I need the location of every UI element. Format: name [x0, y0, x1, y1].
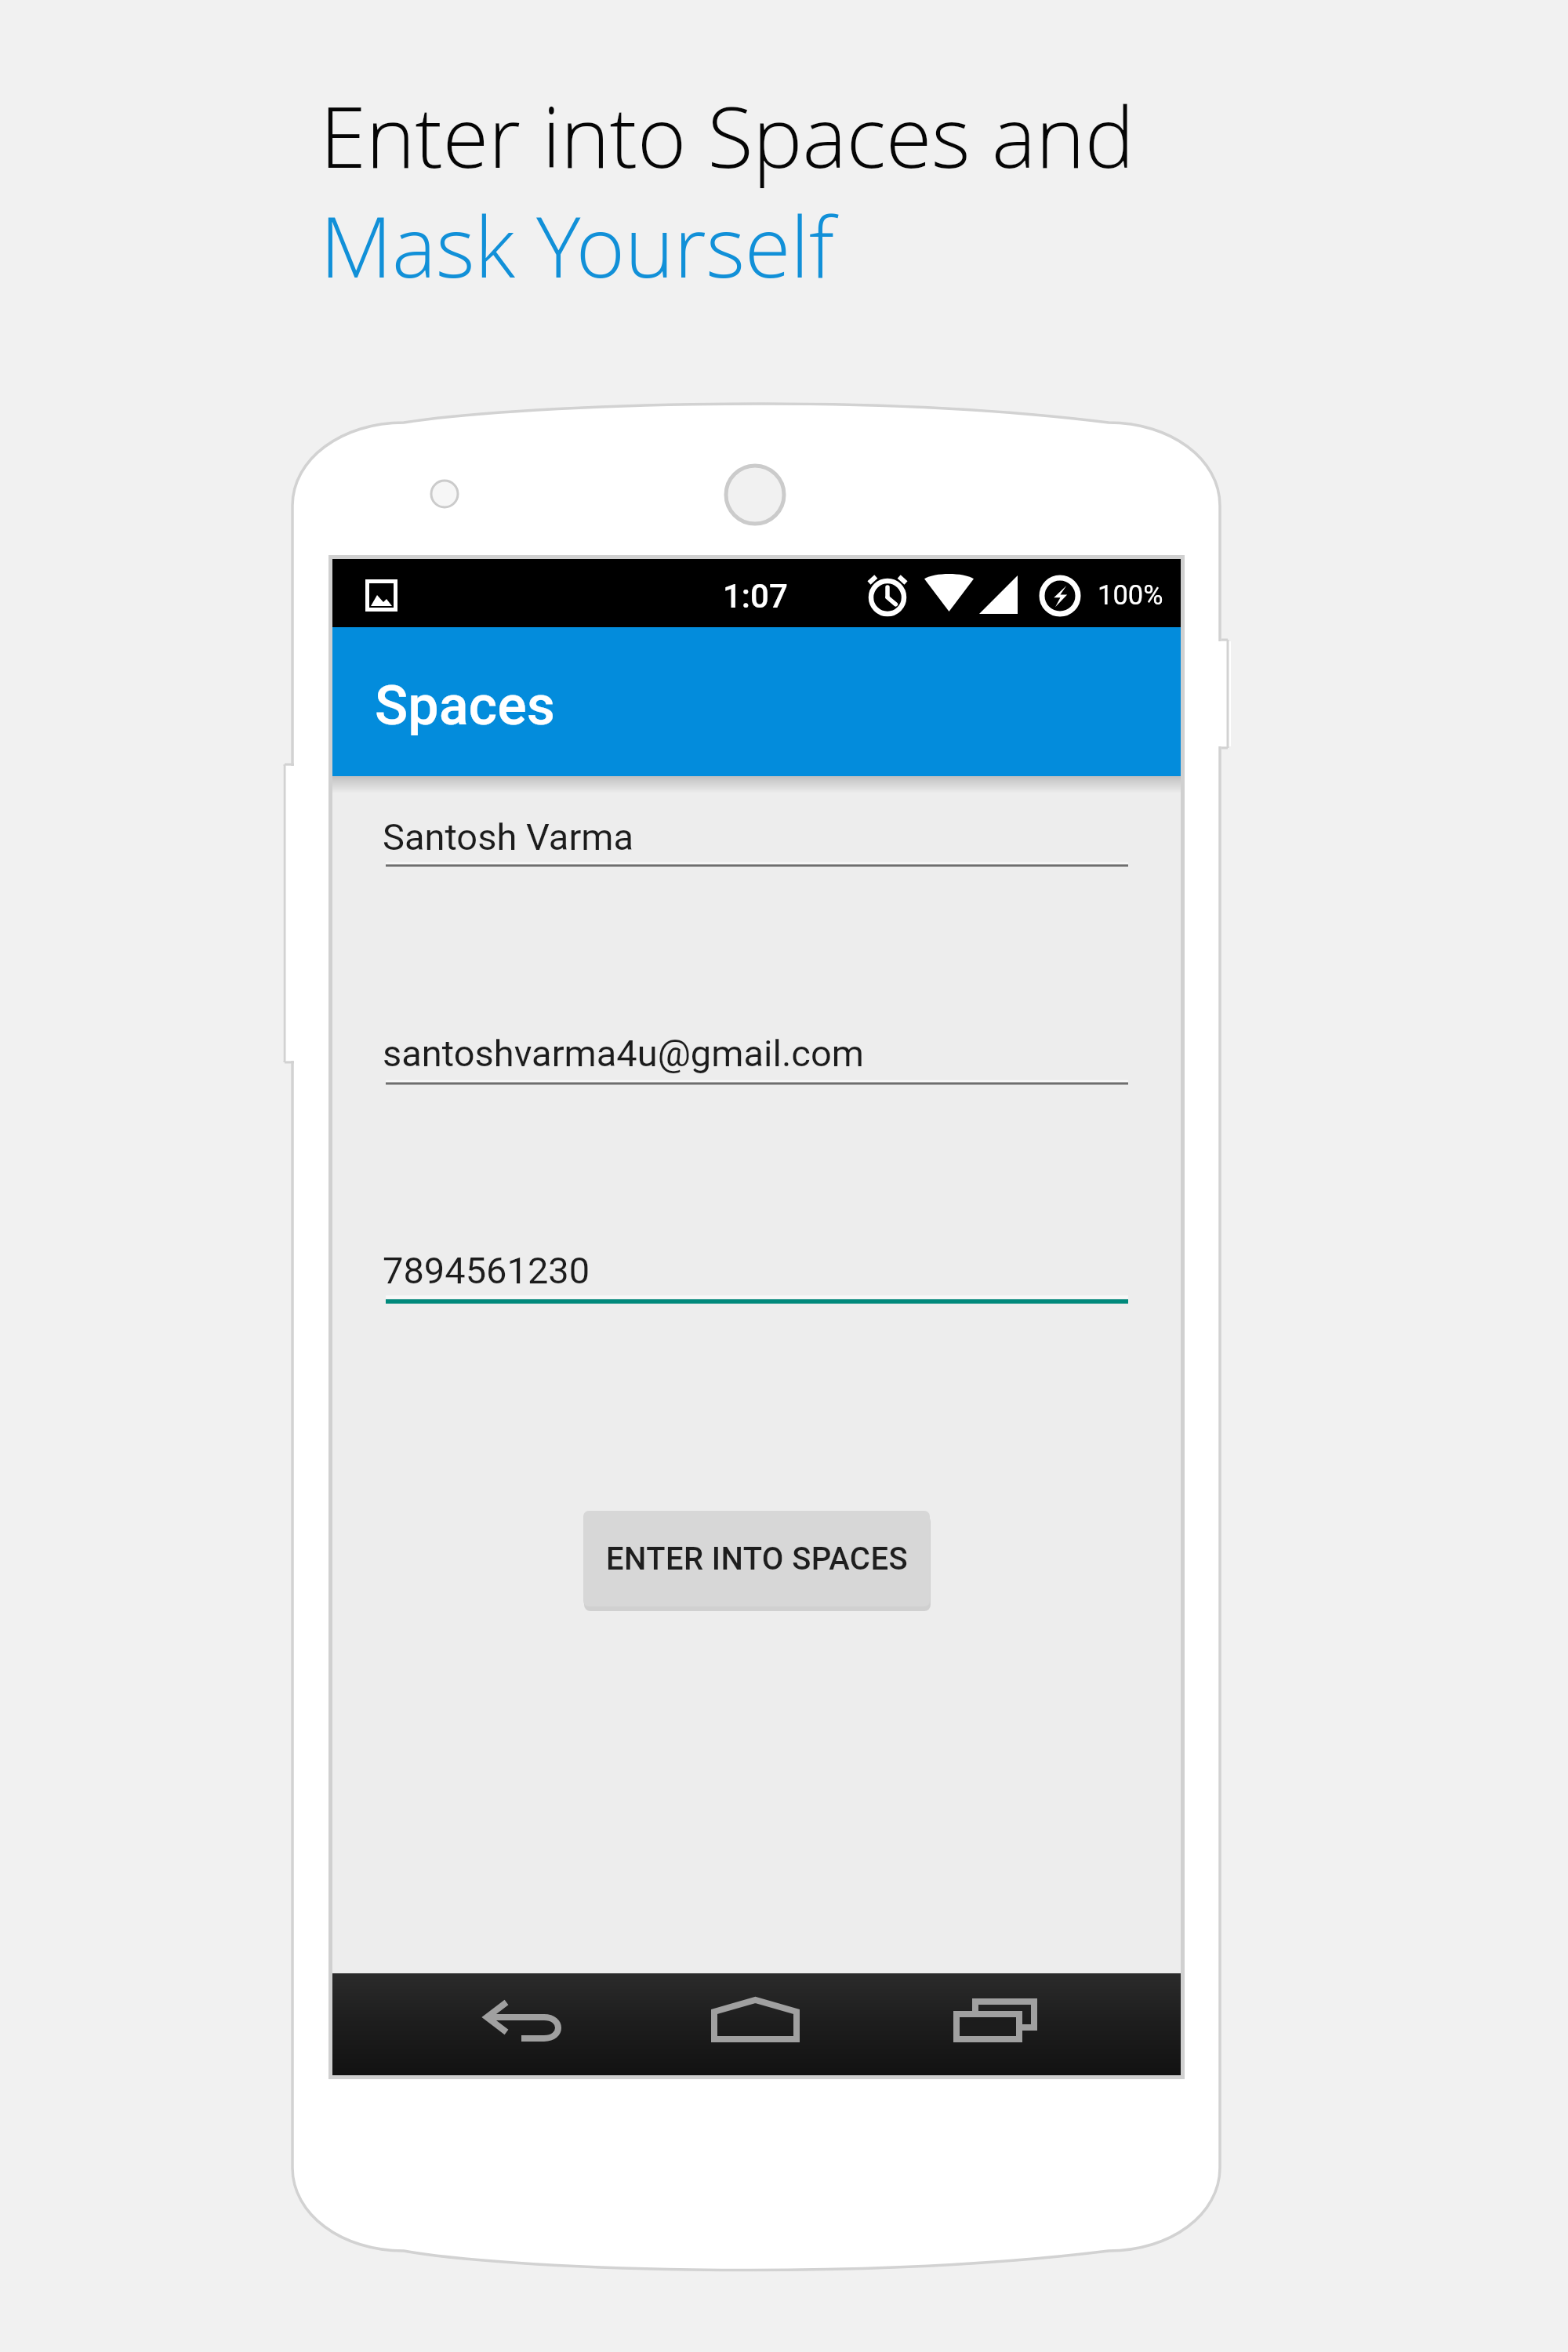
staticText: 100% [1098, 579, 1163, 611]
staticText: 7894561230 [383, 1249, 590, 1292]
staticText: Spaces [375, 673, 555, 738]
button[interactable]: santoshvarma4u@gmail.com [383, 1032, 1128, 1094]
staticText: santoshvarma4u@gmail.com [383, 1032, 864, 1075]
button[interactable]: Back [447, 1975, 604, 2077]
button[interactable]: ENTER INTO SPACES [583, 1511, 930, 1606]
button[interactable]: 7894561230 [383, 1249, 1128, 1312]
staticText: ENTER INTO SPACES [606, 1541, 908, 1577]
staticText: 1:07 [723, 577, 788, 615]
staticText: Mask Yourself [320, 188, 834, 303]
staticText: Enter into Spaces and [320, 78, 1134, 193]
button[interactable]: Santosh Varma [383, 815, 1128, 877]
button[interactable]: Home [690, 1973, 815, 2075]
staticText: Santosh Varma [383, 815, 634, 858]
button[interactable]: Recent apps [944, 1971, 1077, 2073]
